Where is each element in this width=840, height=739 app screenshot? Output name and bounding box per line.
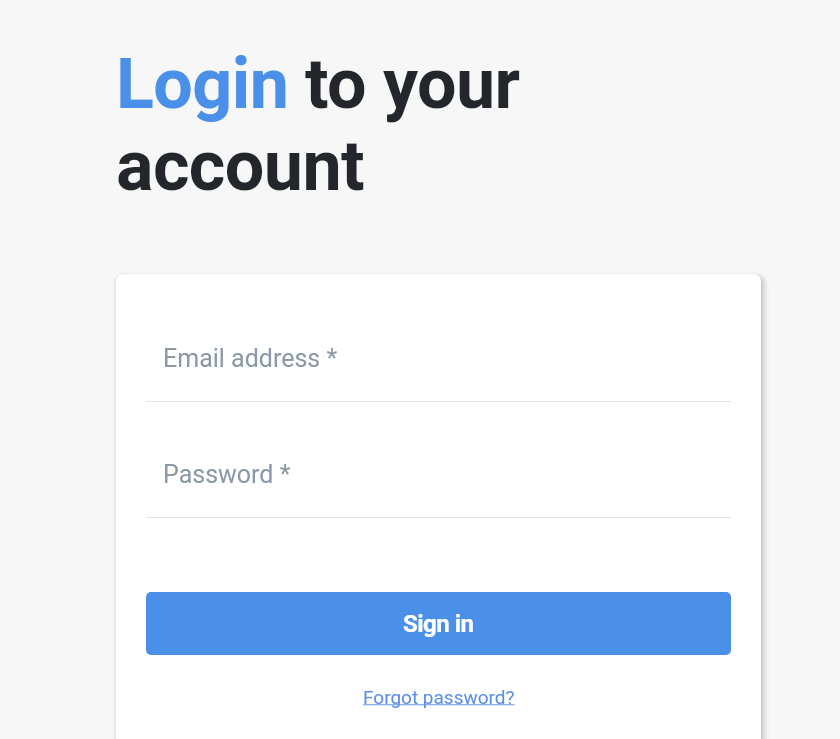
staticText: Sign in	[403, 610, 474, 638]
button[interactable]: Sign in	[146, 592, 731, 655]
staticText: Login to your account	[116, 43, 586, 207]
button[interactable]	[146, 450, 731, 518]
staticText: Password *	[163, 460, 291, 489]
staticText: Email address *	[163, 344, 338, 373]
button[interactable]: Forgot password?	[363, 686, 515, 708]
button[interactable]	[146, 334, 731, 402]
